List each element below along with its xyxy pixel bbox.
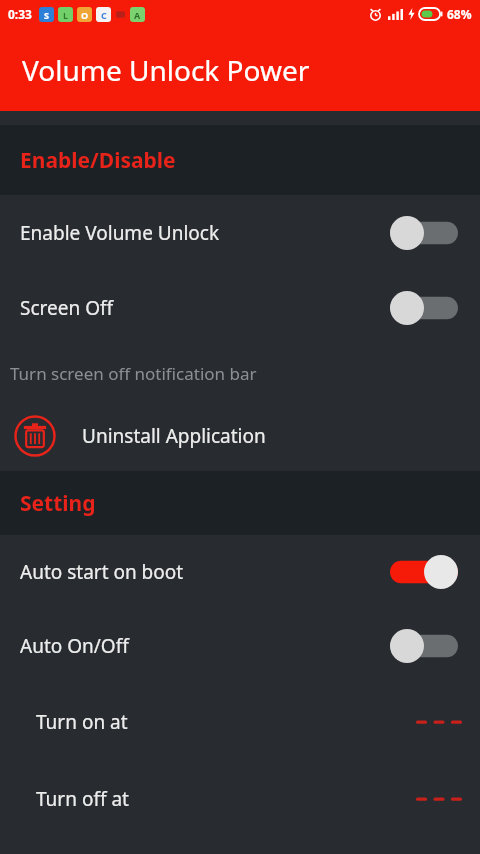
staticText: A	[134, 9, 141, 21]
staticText: Enable Volume Unlock	[20, 220, 220, 246]
staticText: 68%	[447, 6, 472, 22]
other: Toggle off	[390, 629, 458, 663]
staticText: Enable/Disable	[20, 146, 176, 175]
button[interactable]: Turn off at	[0, 760, 480, 837]
button[interactable]: Auto On/Off	[0, 609, 480, 683]
other: Toggle on	[390, 555, 458, 589]
staticText: S	[44, 9, 49, 21]
staticText: L	[63, 9, 69, 21]
button[interactable]: Turn on at	[0, 683, 480, 760]
other: Toggle off	[390, 291, 458, 325]
staticText: Screen Off	[20, 295, 114, 321]
staticText: Setting	[20, 489, 96, 518]
staticText: Turn on at	[36, 709, 128, 735]
button[interactable]: Uninstall Application	[0, 401, 480, 471]
button[interactable]: Screen Off	[0, 271, 480, 345]
staticText: Volume Unlock Power	[22, 51, 310, 89]
staticText: Uninstall Application	[82, 423, 266, 449]
other: Toggle off	[390, 216, 458, 250]
staticText: Turn screen off notification bar	[10, 362, 257, 385]
button[interactable]: Enable Volume Unlock	[0, 195, 480, 271]
staticText: 0:33	[8, 6, 32, 22]
staticText: C	[101, 9, 107, 21]
staticText: Turn off at	[36, 786, 129, 812]
staticText: Auto On/Off	[20, 633, 129, 659]
button[interactable]: Auto start on boot	[0, 535, 480, 609]
staticText: O	[81, 9, 89, 21]
staticText: Auto start on boot	[20, 559, 184, 585]
